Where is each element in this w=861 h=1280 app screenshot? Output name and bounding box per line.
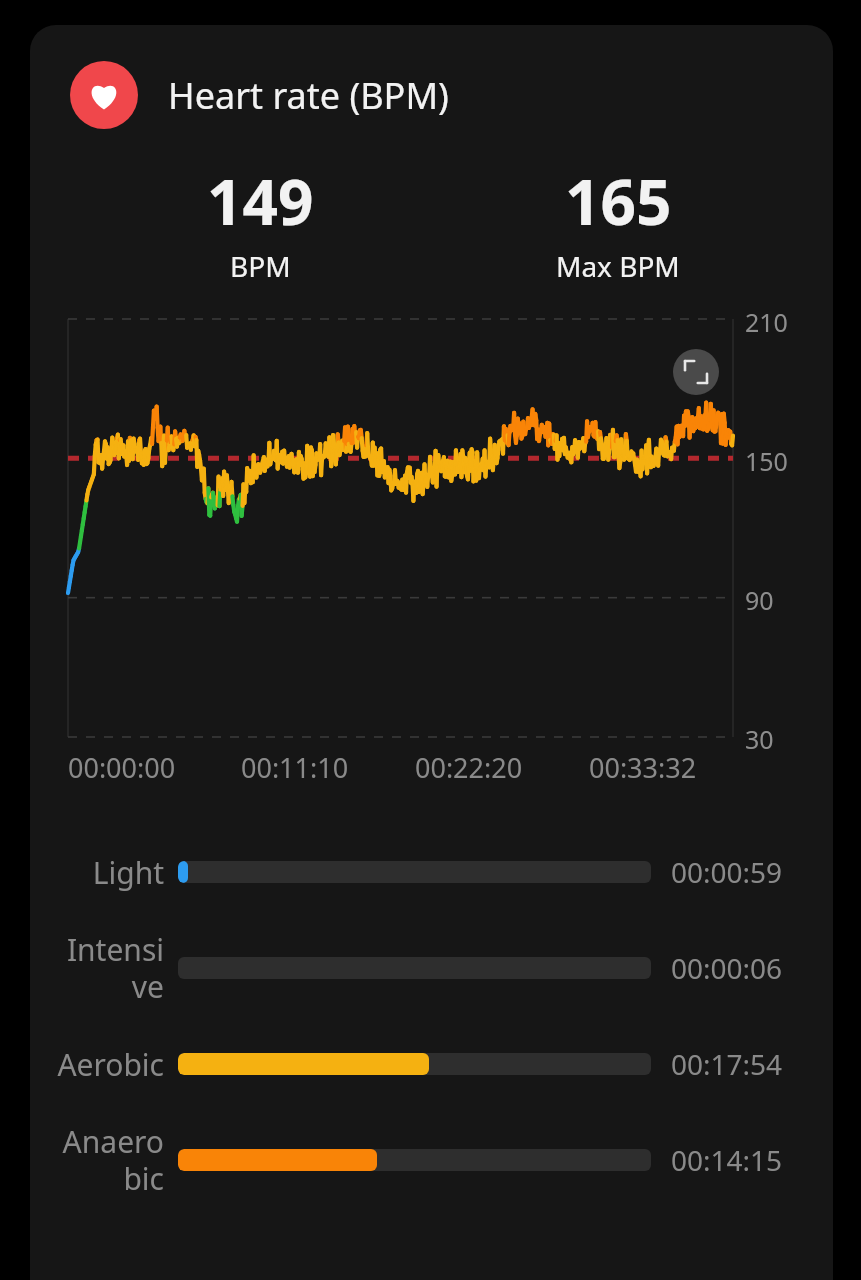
button[interactable]: Heart rate (BPM) <box>70 61 833 129</box>
staticText: 00:11:10 <box>241 749 349 786</box>
staticText: Heart rate (BPM) <box>168 71 449 120</box>
staticText: Intensive <box>52 929 164 1007</box>
staticText: Anaerobic <box>52 1121 164 1199</box>
staticText: 00:00:59 <box>671 853 783 891</box>
staticText: 149 <box>207 159 314 243</box>
staticText: BPM <box>230 247 291 285</box>
staticText: 00:22:20 <box>415 749 523 786</box>
button[interactable]: Intensive <box>30 920 833 1016</box>
staticText: Light <box>92 852 164 893</box>
button[interactable]: Expand chart <box>673 349 719 395</box>
staticText: Max BPM <box>556 247 680 285</box>
staticText: 210 <box>745 305 788 339</box>
staticText: 00:00:00 <box>68 749 176 786</box>
staticText: 165 <box>565 159 672 243</box>
staticText: 00:33:32 <box>589 749 697 786</box>
staticText: 00:17:54 <box>671 1045 783 1083</box>
staticText: 00:14:15 <box>671 1141 783 1179</box>
button[interactable]: Light <box>30 824 833 920</box>
staticText: 150 <box>745 444 788 478</box>
staticText: 30 <box>745 722 774 756</box>
button[interactable]: Anaerobic <box>30 1112 833 1208</box>
staticText: 00:00:06 <box>671 949 783 987</box>
staticText: Aerobic <box>57 1044 164 1085</box>
button[interactable]: Aerobic <box>30 1016 833 1112</box>
staticText: 90 <box>745 583 774 617</box>
